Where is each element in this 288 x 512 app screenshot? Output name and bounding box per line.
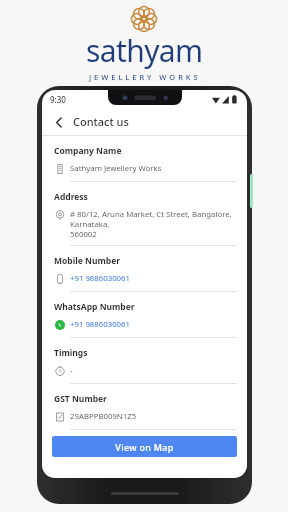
staticText: 9:30 xyxy=(50,94,66,105)
staticText: # 80/12, Aruna Market, Ct Street, Bangal… xyxy=(70,209,237,239)
button[interactable]: View on Map xyxy=(52,436,237,457)
staticText: View on Map xyxy=(115,441,174,453)
staticText: Address xyxy=(54,191,88,203)
staticText: - xyxy=(70,365,73,376)
staticText: Mobile Number xyxy=(54,255,121,267)
staticText: Company Name xyxy=(54,145,122,157)
staticText: Contact us xyxy=(73,114,129,129)
staticText: Timings xyxy=(54,347,88,359)
button[interactable]: Back xyxy=(50,113,68,131)
staticText: GST Number xyxy=(54,393,107,405)
button[interactable]: +91 9886030061 xyxy=(52,273,237,285)
staticText: 29ABPPB009N1Z5 xyxy=(70,411,137,422)
staticText: WhatsApp Number xyxy=(54,301,135,313)
staticText: sathyam xyxy=(86,30,203,71)
staticText: +91 9886030061 xyxy=(70,319,131,330)
staticText: +91 9886030061 xyxy=(70,273,131,284)
staticText: J E W E L L E R Y W O R K S xyxy=(89,72,199,82)
button[interactable]: +91 9886030061 xyxy=(52,319,237,331)
staticText: Sathyam Jewellery Works xyxy=(70,163,162,174)
